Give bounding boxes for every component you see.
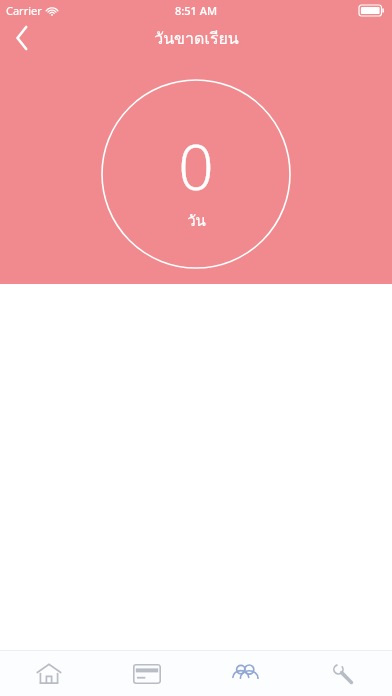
button[interactable]: Payments [98, 651, 196, 696]
button[interactable]: Students [196, 651, 294, 696]
staticText: Carrier [6, 3, 42, 18]
button[interactable]: Back [0, 22, 44, 54]
staticText: 0 [178, 124, 214, 208]
staticText: วันขาดเรียน [154, 26, 239, 51]
button[interactable]: Home [0, 651, 98, 696]
button[interactable]: Settings [294, 651, 392, 696]
staticText: วัน [187, 209, 206, 233]
staticText: 8:51 AM [175, 3, 218, 18]
